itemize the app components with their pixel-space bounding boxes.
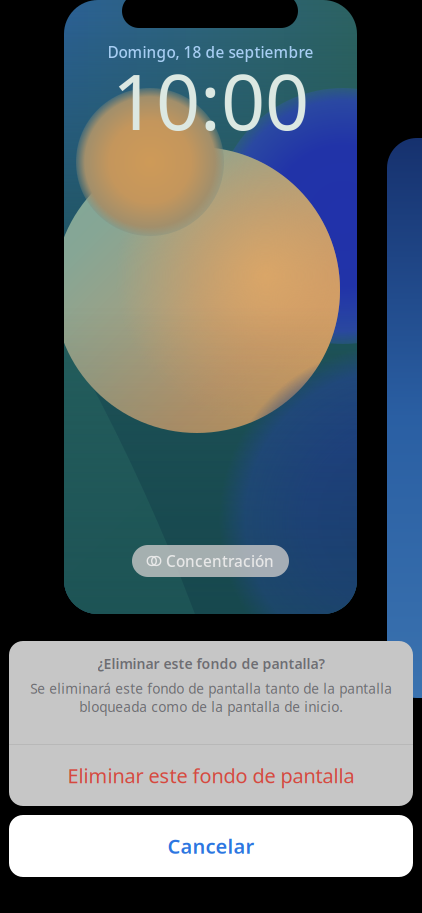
- staticText: Se eliminará este fondo de pantalla tant…: [30, 679, 392, 716]
- staticText: Concentración: [166, 551, 274, 571]
- staticText: ¿Eliminar este fondo de pantalla?: [97, 654, 324, 673]
- staticText: Eliminar este fondo de pantalla: [67, 762, 354, 789]
- button[interactable]: Cancelar: [9, 815, 413, 877]
- staticText: 10:00: [112, 49, 309, 151]
- button[interactable]: Eliminar este fondo de pantalla: [9, 745, 413, 806]
- staticText: Cancelar: [167, 833, 254, 859]
- staticText: Domingo, 18 de septiembre: [107, 42, 313, 62]
